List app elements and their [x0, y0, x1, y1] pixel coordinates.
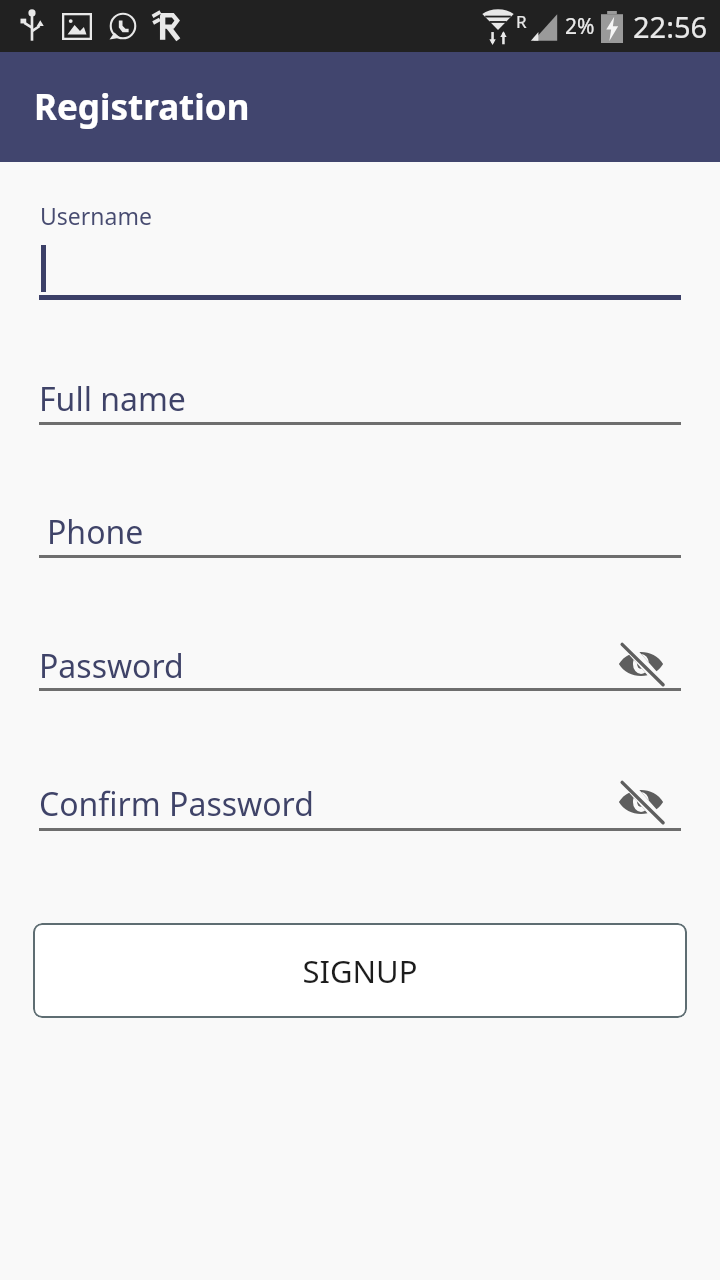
button[interactable]: Password — [39, 639, 681, 693]
staticText: Full name — [39, 377, 186, 421]
button[interactable]: Toggle password visibility — [610, 633, 672, 695]
staticText: Confirm Password — [39, 782, 314, 826]
button[interactable]: Username — [39, 200, 681, 300]
staticText: SIGNUP — [302, 950, 418, 992]
button[interactable]: SIGNUP — [33, 923, 687, 1018]
button[interactable]: Phone — [39, 505, 681, 559]
staticText: Password — [39, 644, 184, 688]
staticText: 22:56 — [633, 7, 708, 46]
staticText: R — [516, 10, 527, 33]
staticText: Registration — [34, 83, 250, 131]
staticText: Username — [40, 200, 152, 231]
button[interactable]: Confirm Password — [39, 777, 681, 831]
button[interactable]: Full name — [39, 372, 681, 426]
button[interactable]: Toggle password visibility — [610, 771, 672, 833]
staticText: 2% — [565, 12, 595, 41]
staticText: Phone — [47, 510, 144, 554]
